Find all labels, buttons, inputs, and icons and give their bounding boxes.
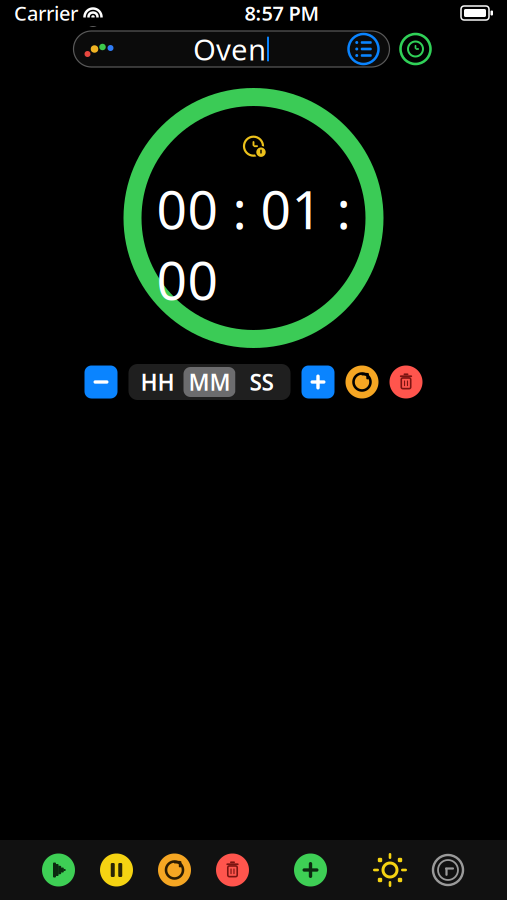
button[interactable]: HH xyxy=(131,367,183,397)
staticText: HH xyxy=(140,367,174,397)
staticText: 8:57 PM xyxy=(244,0,319,26)
button[interactable]: Reset xyxy=(158,853,191,886)
button[interactable]: Add timer xyxy=(294,853,327,886)
button[interactable]: Start xyxy=(42,853,75,886)
button[interactable]: Delete xyxy=(389,365,422,398)
staticText: 00 : 01 : 00 xyxy=(156,173,350,315)
button[interactable]: Pause xyxy=(100,853,133,886)
button[interactable]: Delete xyxy=(216,853,249,886)
staticText: SS xyxy=(249,367,273,397)
staticText: Oven xyxy=(193,29,266,68)
button[interactable]: Reset xyxy=(345,365,378,398)
button[interactable]: SS xyxy=(235,367,287,397)
button[interactable]: Timer presets xyxy=(397,31,433,67)
staticText: MM xyxy=(188,367,230,397)
staticText: Carrier xyxy=(14,0,78,26)
button[interactable]: Decrease xyxy=(84,365,117,398)
button[interactable]: Settings xyxy=(430,852,466,888)
button[interactable]: Increase xyxy=(301,365,334,398)
button[interactable]: MM xyxy=(183,367,235,397)
button[interactable]: Oven xyxy=(73,31,389,67)
button[interactable]: Brightness xyxy=(372,852,408,888)
